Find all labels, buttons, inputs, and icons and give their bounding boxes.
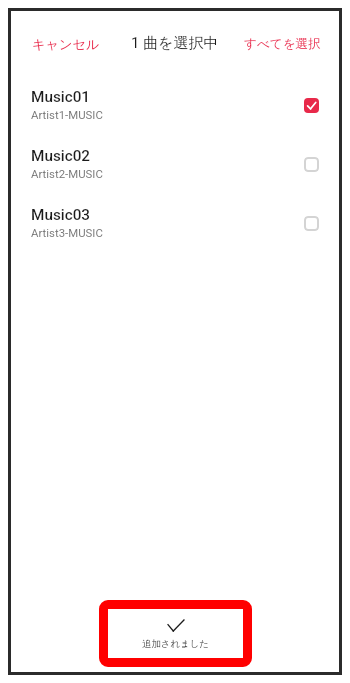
staticText: Artist2-MUSIC [31, 167, 103, 180]
button[interactable]: Not selected [304, 216, 319, 231]
staticText: 1 曲を選択中 [131, 34, 219, 53]
staticText: Music02 [31, 147, 91, 165]
staticText: Music03 [31, 206, 91, 224]
button[interactable]: すべてを選択 [230, 26, 334, 62]
button[interactable]: Music01 [8, 76, 342, 135]
button[interactable]: キャンセル [18, 26, 114, 63]
staticText: Artist1-MUSIC [31, 108, 103, 121]
staticText: 追加されました [142, 638, 209, 650]
button[interactable]: Music03 [8, 194, 342, 253]
button[interactable]: Not selected [304, 157, 319, 172]
staticText: キャンセル [32, 36, 100, 53]
button[interactable]: Selected [304, 98, 319, 113]
staticText: Music01 [31, 88, 91, 106]
staticText: すべてを選択 [244, 36, 321, 52]
staticText: Artist3-MUSIC [31, 226, 103, 239]
button[interactable]: Music02 [8, 135, 342, 194]
